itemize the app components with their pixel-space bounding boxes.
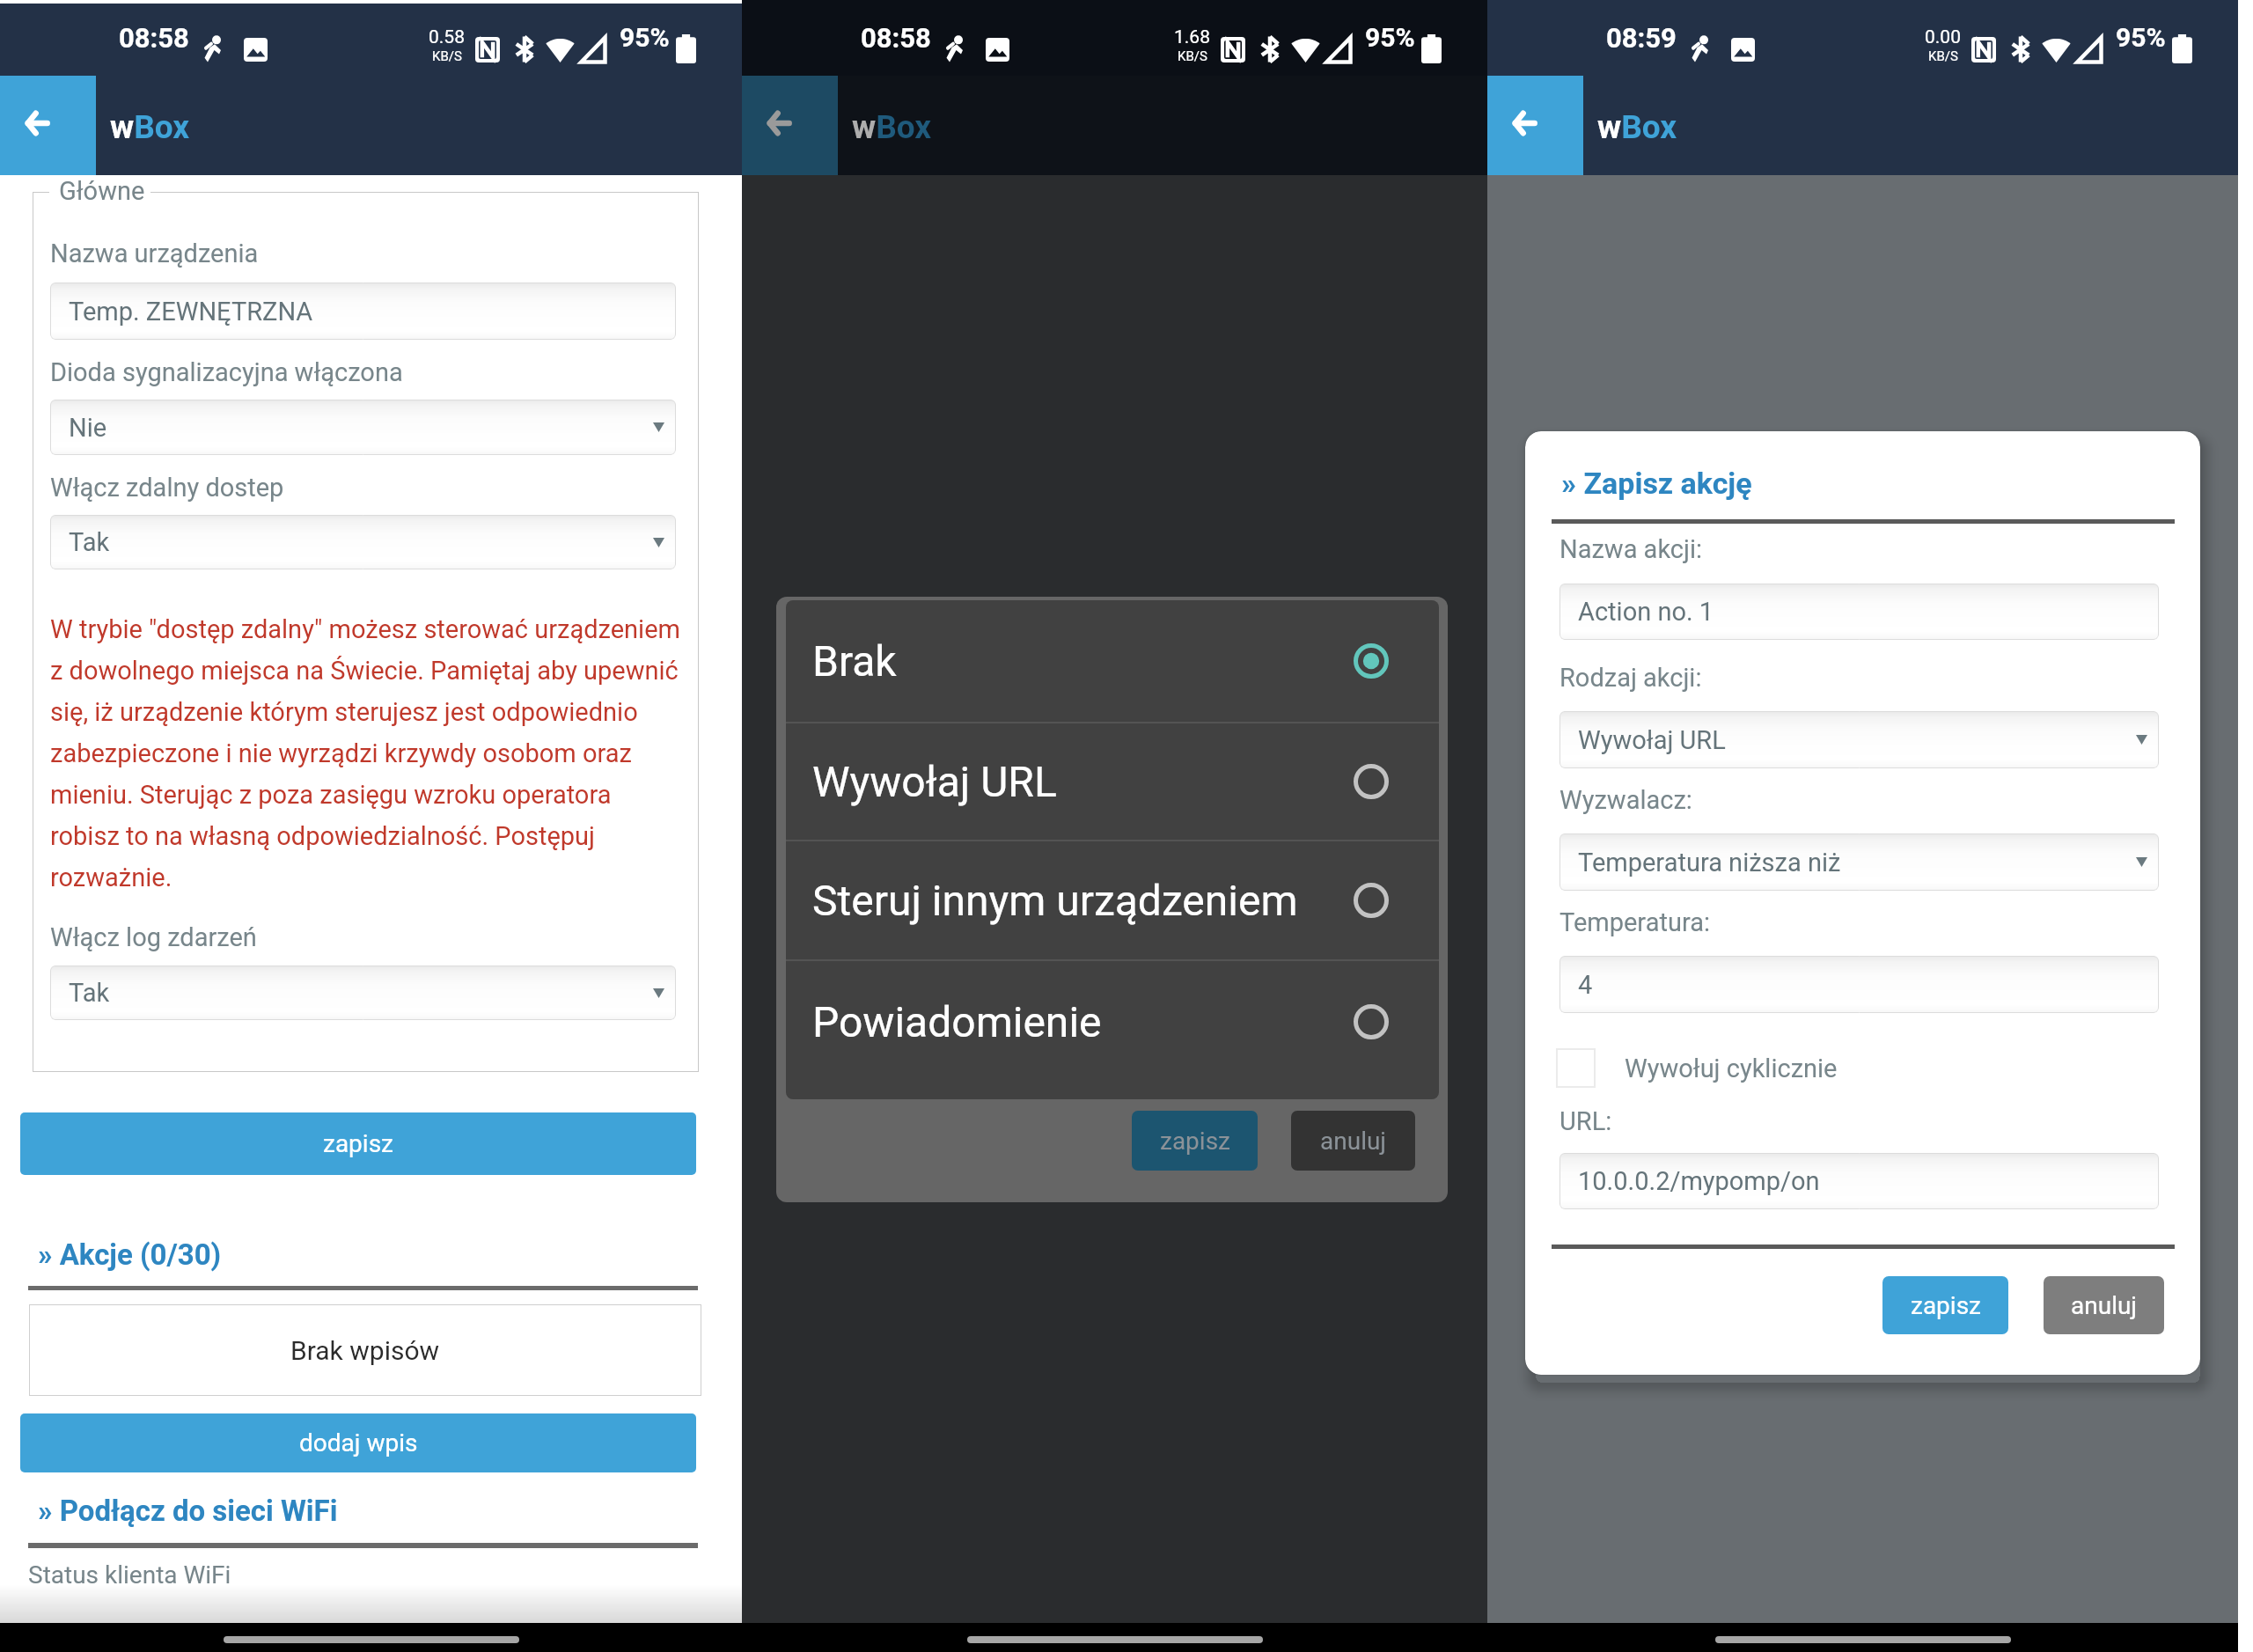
button[interactable]: Back — [0, 76, 96, 175]
button[interactable]: 10.0.0.2/mypomp/on — [1559, 1153, 2159, 1209]
staticText: Brak — [812, 636, 897, 686]
button[interactable]: zapisz — [1882, 1276, 2008, 1334]
staticText: KB/S — [1178, 48, 1207, 64]
button[interactable]: Tak — [50, 966, 676, 1020]
button[interactable]: Temperatura niższa niż — [1559, 833, 2159, 891]
staticText: Wyzwalacz: — [1559, 785, 1692, 815]
staticText: 10.0.0.2/mypomp/on — [1578, 1166, 1820, 1196]
button[interactable]: Steruj innym urządzeniem — [786, 841, 1439, 959]
staticText: dodaj wpis — [299, 1428, 418, 1457]
button[interactable]: 4 — [1559, 956, 2159, 1013]
staticText: Action no. 1 — [1578, 597, 1714, 627]
staticText: Temperatura: — [1559, 907, 1710, 937]
staticText: zapisz — [1911, 1291, 1981, 1320]
staticText: Steruj innym urządzeniem — [812, 876, 1298, 925]
button[interactable]: Brak wpisów — [29, 1304, 701, 1396]
staticText: wBox — [110, 108, 190, 146]
staticText: wBox — [852, 108, 932, 146]
staticText: Wywołaj URL — [812, 757, 1057, 806]
staticText: anuluj — [1320, 1127, 1387, 1156]
staticText: Nazwa akcji: — [1559, 534, 1702, 564]
staticText: 08:58 — [861, 22, 931, 54]
button[interactable]: Action no. 1 — [1559, 584, 2159, 640]
staticText: 95% — [2116, 22, 2166, 53]
staticText: anuluj — [2071, 1291, 2138, 1320]
staticText: Nie — [69, 413, 107, 443]
staticText: Wywołaj URL — [1578, 725, 1726, 755]
staticText: » Zapisz akcję — [1561, 466, 1752, 501]
staticText: 95% — [620, 22, 670, 53]
button[interactable]: anuluj — [2044, 1276, 2164, 1334]
staticText: Rodzaj akcji: — [1559, 663, 1702, 693]
button[interactable]: Back — [1487, 76, 1583, 175]
staticText: Nazwa urządzenia — [50, 239, 259, 268]
staticText: » Akcje (0/30) — [38, 1237, 222, 1272]
staticText: Tak — [69, 978, 110, 1008]
staticText: URL: — [1559, 1106, 1612, 1136]
staticText: KB/S — [432, 48, 462, 64]
staticText: zapisz — [1160, 1127, 1230, 1156]
staticText: Brak wpisów — [290, 1335, 440, 1366]
button[interactable]: zapisz — [1132, 1111, 1258, 1171]
staticText: Dioda sygnalizacyjna włączona — [50, 357, 403, 387]
staticText: Włącz zdalny dostep — [50, 473, 284, 503]
staticText: Główne — [59, 177, 145, 206]
button[interactable]: Back — [742, 76, 838, 175]
staticText: 0.58 — [429, 26, 465, 48]
button[interactable]: Wywołaj URL — [1559, 711, 2159, 768]
staticText: 0.00 — [1925, 26, 1961, 48]
staticText: Powiadomienie — [812, 997, 1102, 1046]
staticText: KB/S — [1928, 48, 1958, 64]
staticText: 95% — [1365, 22, 1415, 53]
button[interactable]: Tak — [50, 515, 676, 569]
staticText: Włącz log zdarzeń — [50, 922, 257, 952]
staticText: wBox — [1597, 108, 1677, 146]
staticText: Temp. ZEWNĘTRZNA — [69, 297, 313, 327]
button[interactable]: dodaj wpis — [20, 1413, 696, 1472]
button[interactable]: Brak — [786, 600, 1439, 722]
button[interactable]: Nie — [50, 400, 676, 455]
button[interactable]: zapisz — [20, 1112, 696, 1175]
staticText: 08:59 — [1606, 22, 1677, 54]
staticText: 08:58 — [119, 22, 189, 54]
staticText: Temperatura niższa niż — [1578, 848, 1841, 877]
staticText: W trybie "dostęp zdalny" możesz sterować… — [50, 614, 686, 892]
staticText: » Podłącz do sieci WiFi — [38, 1494, 338, 1528]
staticText: 1.68 — [1174, 26, 1210, 48]
staticText: zapisz — [323, 1129, 393, 1158]
staticText: Tak — [69, 527, 110, 557]
button[interactable]: Wywołaj URL — [786, 723, 1439, 840]
staticText: Wywołuj cyklicznie — [1625, 1054, 1838, 1083]
button[interactable]: Temp. ZEWNĘTRZNA — [50, 283, 676, 340]
button[interactable]: Wywołuj cyklicznie — [1556, 1048, 1838, 1088]
button[interactable]: anuluj — [1291, 1111, 1415, 1171]
staticText: Status klienta WiFi — [28, 1560, 231, 1590]
button[interactable]: Powiadomienie — [786, 961, 1439, 1082]
staticText: 4 — [1578, 970, 1593, 1000]
